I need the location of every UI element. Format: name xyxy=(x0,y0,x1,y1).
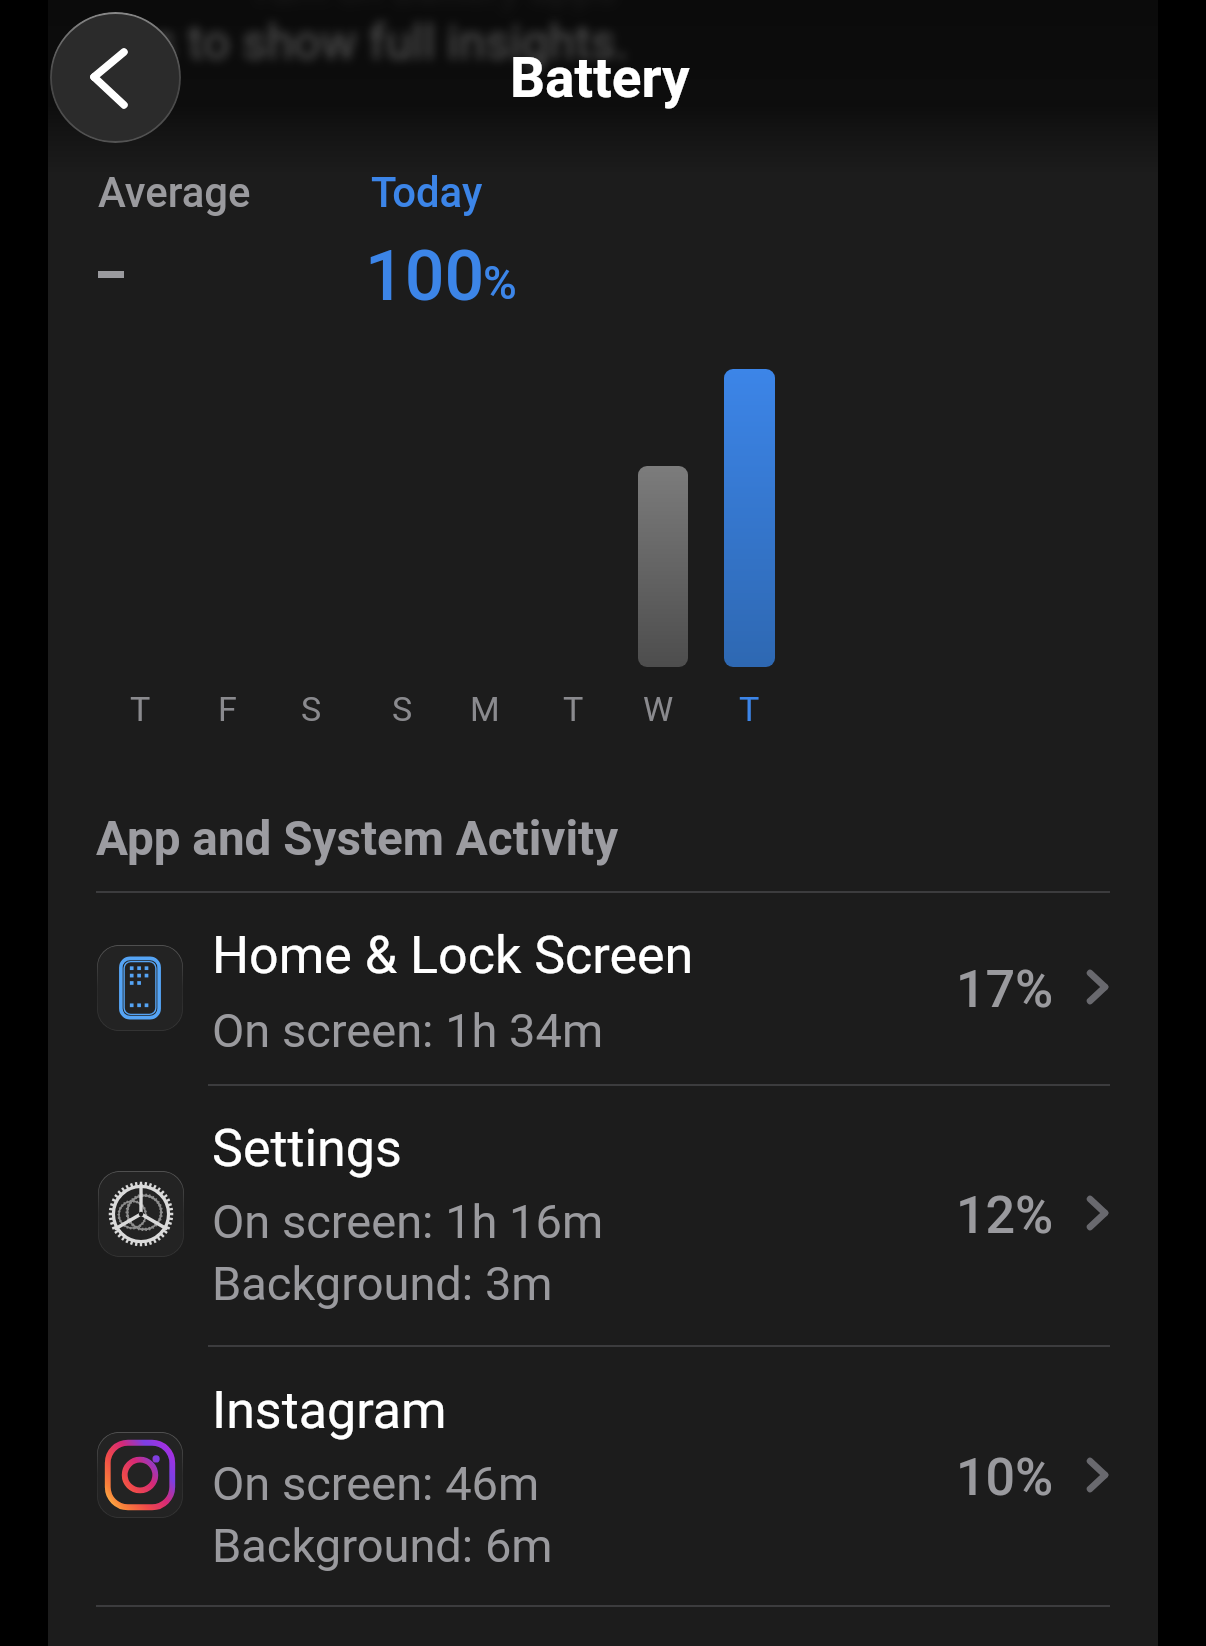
button[interactable]: Back xyxy=(50,12,181,143)
staticText: S xyxy=(392,689,413,729)
staticText: 17% xyxy=(956,959,1054,1020)
staticText: Average xyxy=(98,168,251,217)
staticText: On screen: 46m xyxy=(212,1456,540,1511)
staticText: On screen: 1h 34m xyxy=(212,1003,604,1058)
staticText: T xyxy=(739,689,760,729)
staticText: T xyxy=(563,689,584,729)
button[interactable]: Instagram, 10% of battery xyxy=(96,1347,1110,1605)
staticText: M xyxy=(470,689,500,729)
staticText: S xyxy=(301,689,322,729)
staticText: On screen: 1h 16m xyxy=(212,1194,604,1249)
staticText: T xyxy=(130,689,151,729)
staticText: Battery xyxy=(510,46,690,110)
staticText: 10% xyxy=(956,1447,1054,1508)
staticText: Background: 3m xyxy=(212,1256,553,1311)
staticText: Background: 6m xyxy=(212,1518,553,1573)
staticText: W xyxy=(643,689,674,729)
staticText: 12% xyxy=(956,1185,1054,1246)
staticText: Instagram xyxy=(212,1380,447,1441)
staticText: Home & Lock Screen xyxy=(212,925,694,986)
staticText: F xyxy=(218,689,237,729)
staticText: 100 xyxy=(365,235,485,317)
staticText: ps to show full insights. xyxy=(124,14,629,70)
staticText: Today xyxy=(371,168,483,217)
staticText: Settings xyxy=(212,1118,402,1179)
staticText: % xyxy=(483,256,517,310)
staticText: App and System Activity xyxy=(96,811,619,867)
button[interactable]: Home & Lock Screen, 17% of battery xyxy=(96,900,1110,1084)
button[interactable]: Settings, 12% of battery xyxy=(96,1086,1110,1345)
